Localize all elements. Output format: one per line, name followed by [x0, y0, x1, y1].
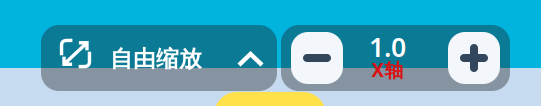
staticText: 自由缩放 — [110, 45, 202, 73]
staticText: X轴 — [371, 57, 403, 82]
button[interactable]: Decrease scale — [291, 32, 343, 84]
button[interactable]: 自由缩放 — [41, 25, 277, 91]
staticText: 1.0 — [369, 29, 406, 64]
button[interactable]: Increase scale — [448, 32, 500, 84]
